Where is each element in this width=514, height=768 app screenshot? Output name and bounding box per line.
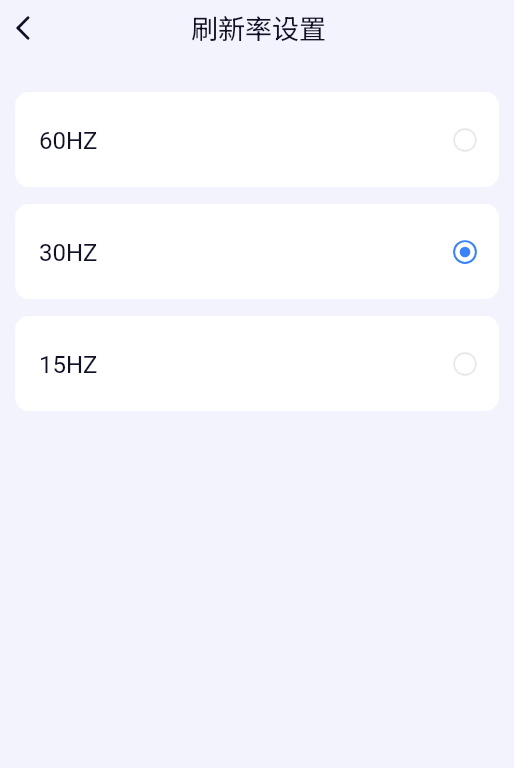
staticText: 刷新率设置 (191, 8, 326, 47)
staticText: 60HZ (39, 127, 98, 155)
button[interactable]: 15HZ (15, 316, 499, 411)
staticText: 30HZ (39, 239, 98, 267)
staticText: 15HZ (39, 351, 98, 379)
button[interactable]: Back (1, 6, 45, 50)
button[interactable]: 60HZ (15, 92, 499, 187)
button[interactable]: 30HZ (15, 204, 499, 299)
